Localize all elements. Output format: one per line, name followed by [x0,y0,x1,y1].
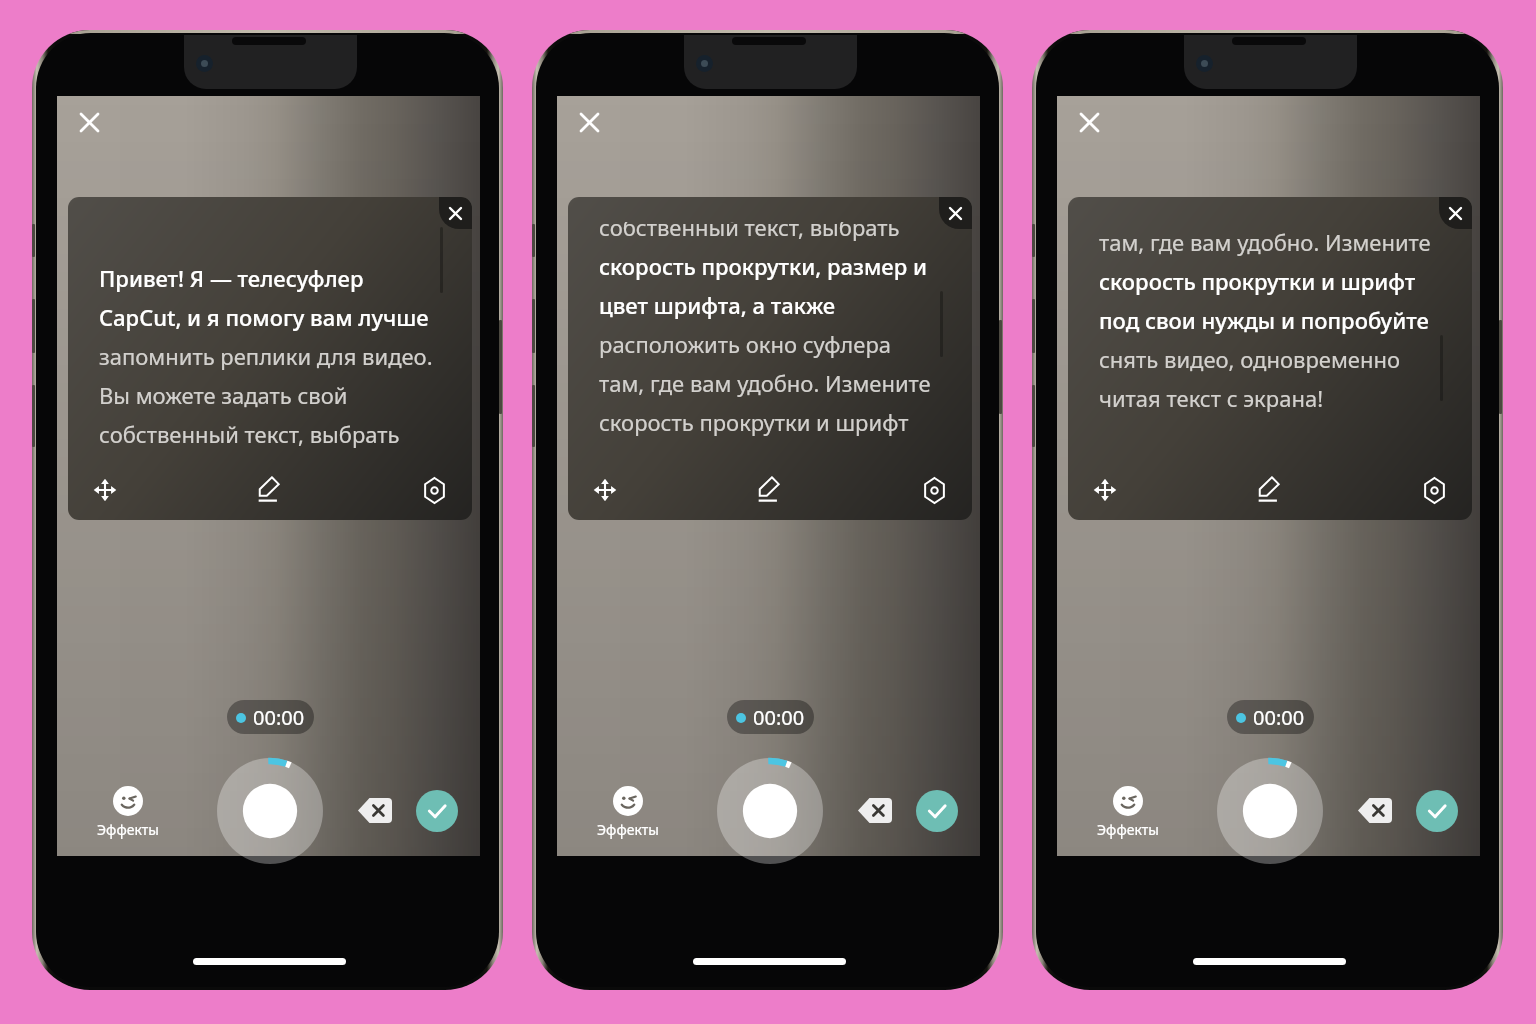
staticText: Вы можете задать свой [99,380,348,410]
button[interactable]: 00:00 [727,700,814,734]
button[interactable]: Record [1217,758,1323,864]
button[interactable]: Edit [247,465,291,509]
button[interactable]: Эффекты [588,786,668,839]
staticText: там, где вам удобно. Измените [1099,227,1431,257]
button[interactable]: Close [67,100,111,144]
button[interactable]: Delete [358,798,392,823]
staticText: собственный текст, выбрать [99,419,400,449]
staticText: скорость прокрутки и шрифт [1099,266,1416,296]
button[interactable]: Close teleprompter [939,197,972,229]
button[interactable]: Edit [747,465,791,509]
button[interactable]: Edit [1247,465,1291,509]
staticText: Привет! Я — телесуфлер [99,263,364,293]
staticText: скорость прокрутки и шрифт [599,407,909,437]
staticText: снять видео, одновременно [1099,344,1401,374]
button[interactable]: Close [567,100,611,144]
staticText: читая текст с экрана! [1099,383,1324,413]
staticText: 00:00 [1253,704,1305,731]
button[interactable]: Delete [858,798,892,823]
button[interactable]: 00:00 [227,700,314,734]
staticText: собственный текст, выбрать [599,222,900,242]
button[interactable]: Settings [1412,468,1456,512]
button[interactable]: 00:00 [1227,700,1314,734]
staticText: CapCut, и я помогу вам лучше [99,302,429,332]
staticText: 00:00 [253,704,305,731]
staticText: там, где вам удобно. Измените [599,368,931,398]
button[interactable]: Delete [1358,798,1392,823]
button[interactable]: Эффекты [88,786,168,839]
button[interactable]: Record [717,758,823,864]
button[interactable]: Move [83,468,127,512]
button[interactable]: Record [217,758,323,864]
button[interactable]: Move [1083,468,1127,512]
staticText: Эффекты [597,820,659,839]
button[interactable]: Close teleprompter [439,197,472,229]
staticText: под свои нужды и попробуйте [1099,305,1429,335]
button[interactable]: Move [583,468,627,512]
staticText: Эффекты [1097,820,1159,839]
button[interactable]: Confirm [916,790,958,832]
button[interactable]: Confirm [1416,790,1458,832]
button[interactable]: Confirm [416,790,458,832]
button[interactable]: Settings [412,468,456,512]
staticText: Эффекты [97,820,159,839]
button[interactable]: Close teleprompter [1439,197,1472,229]
button[interactable]: Settings [912,468,956,512]
staticText: расположить окно суфлера [599,329,891,359]
staticText: 00:00 [753,704,805,731]
button[interactable]: Эффекты [1088,786,1168,839]
button[interactable]: Close [1067,100,1111,144]
staticText: цвет шрифта, а также [599,290,836,320]
staticText: запомнить реплики для видео. [99,341,433,371]
staticText: скорость прокрутки, размер и [599,251,927,281]
